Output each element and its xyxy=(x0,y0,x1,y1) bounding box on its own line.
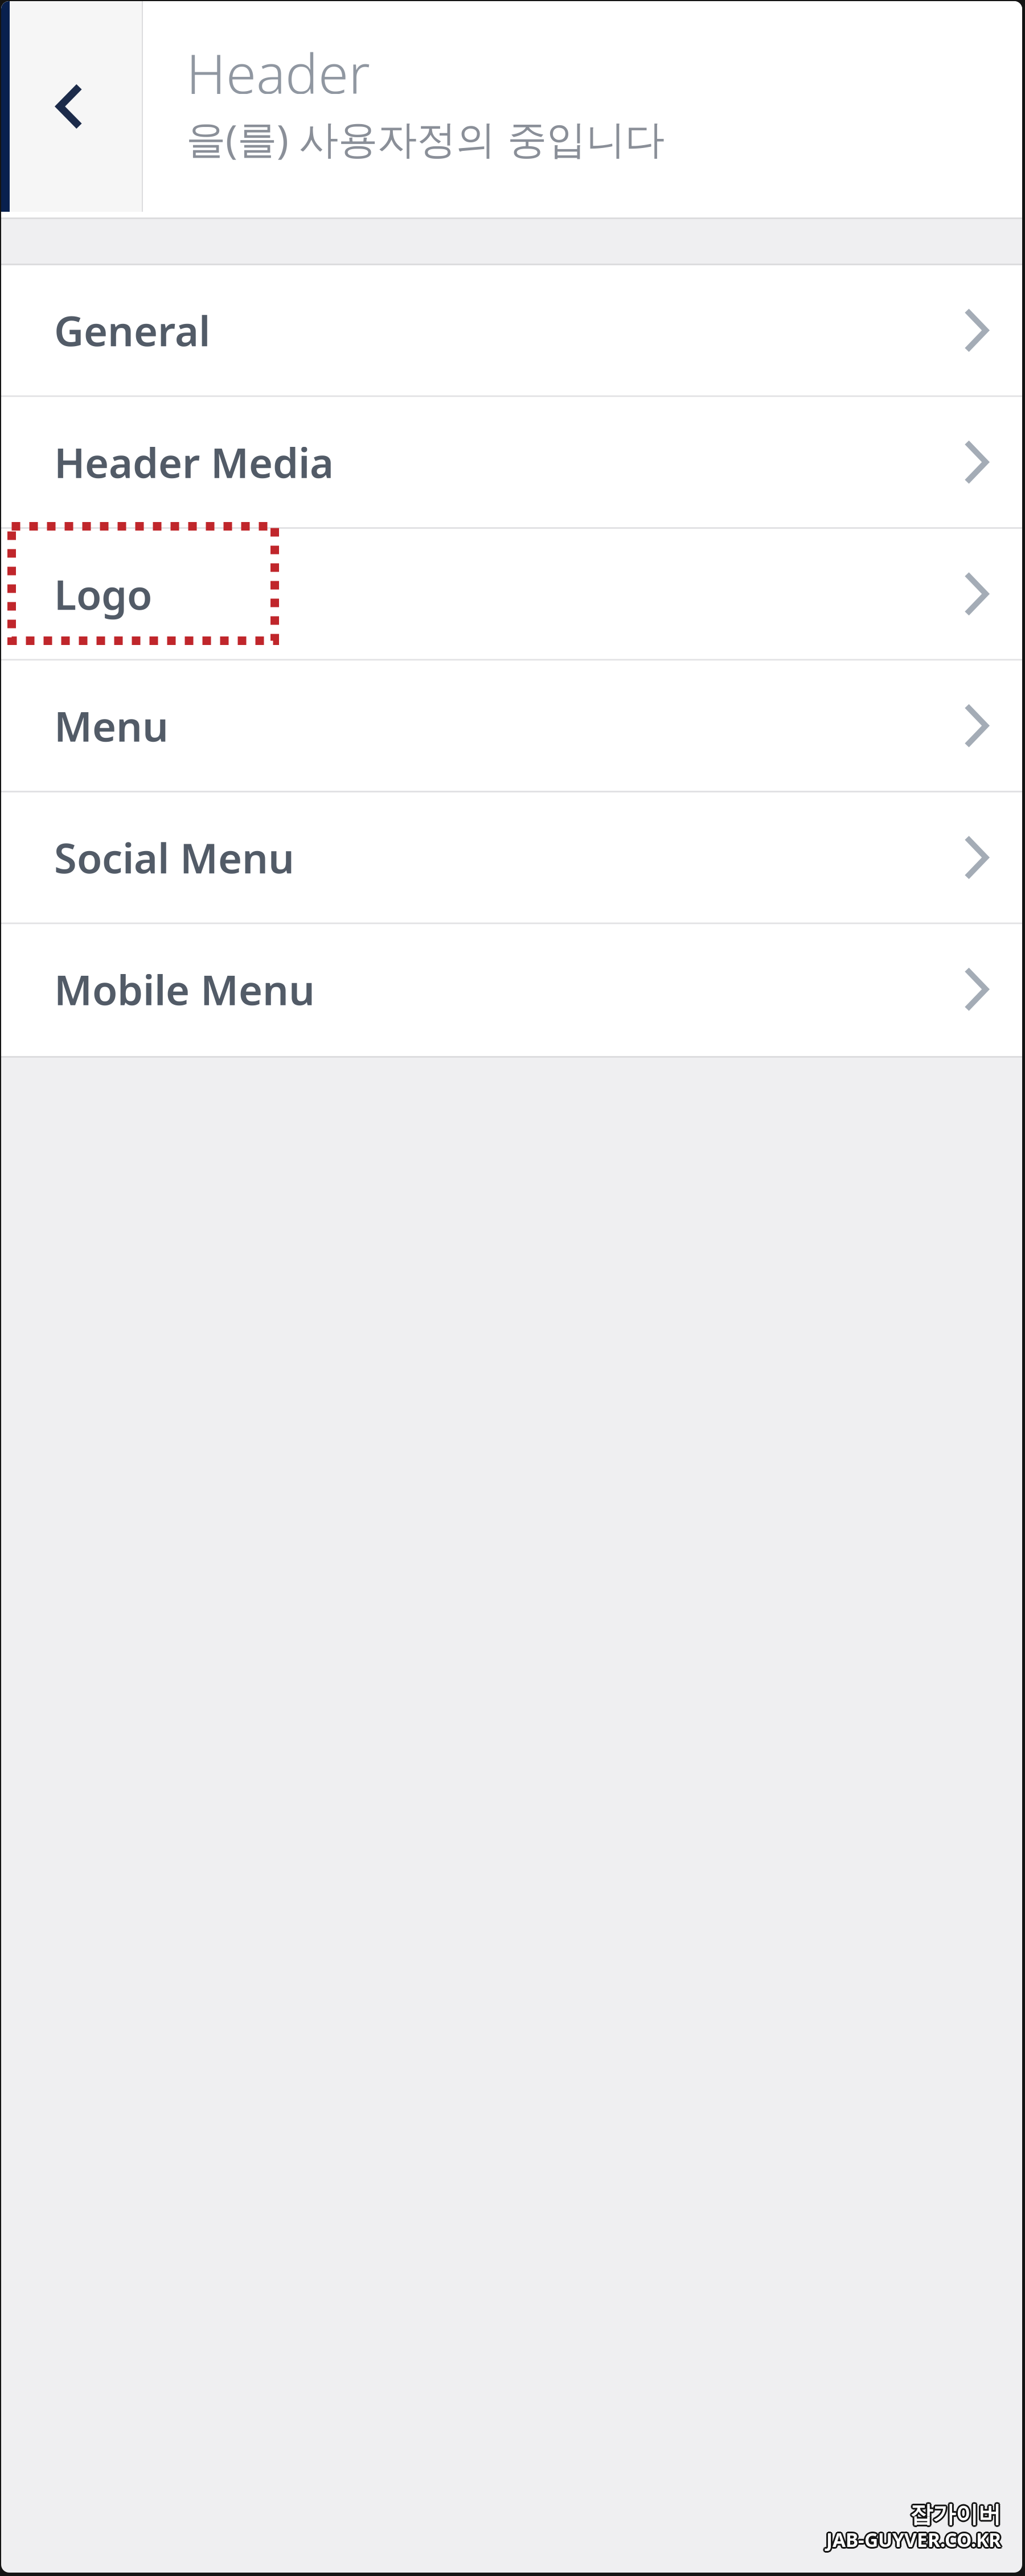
staticText: JAB-GUYVER.CO.KR xyxy=(827,2528,1002,2553)
button[interactable]: General xyxy=(1,265,1022,397)
staticText: Logo xyxy=(54,567,152,621)
staticText: Header xyxy=(186,36,370,109)
button[interactable]: Social Menu xyxy=(1,792,1022,924)
staticText: JAB-GUYVER.CO.KR xyxy=(827,2526,1002,2551)
staticText: JAB-GUYVER.CO.KR xyxy=(825,2528,1000,2553)
staticText: 잡가이버 xyxy=(909,2501,1000,2529)
staticText: 잡가이버 xyxy=(910,2500,1001,2528)
staticText: 잡가이버 xyxy=(911,2499,1002,2527)
staticText: Menu xyxy=(54,698,169,753)
staticText: 잡가이버 xyxy=(909,2499,1000,2527)
staticText: 을(를) 사용자정의 중입니다 xyxy=(186,112,665,165)
staticText: Mobile Menu xyxy=(54,962,315,1016)
button[interactable]: Back xyxy=(10,1,142,217)
staticText: 잡가이버 xyxy=(911,2501,1002,2529)
staticText: JAB-GUYVER.CO.KR xyxy=(826,2529,1001,2554)
button[interactable]: Logo xyxy=(1,529,1022,661)
button[interactable]: Mobile Menu xyxy=(1,924,1022,1056)
staticText: Social Menu xyxy=(54,830,294,885)
button[interactable]: Header Media xyxy=(1,397,1022,529)
staticText: JAB-GUYVER.CO.KR xyxy=(828,2527,1003,2552)
staticText: JAB-GUYVER.CO.KR xyxy=(825,2526,1000,2551)
staticText: JAB-GUYVER.CO.KR xyxy=(826,2525,1001,2551)
staticText: JAB-GUYVER.CO.KR xyxy=(825,2527,999,2552)
staticText: 잡가이버 xyxy=(910,2499,1001,2527)
staticText: 잡가이버 xyxy=(908,2500,999,2528)
staticText: JAB-GUYVER.CO.KR xyxy=(826,2527,1001,2552)
staticText: 잡가이버 xyxy=(912,2500,1003,2528)
staticText: Header Media xyxy=(54,435,334,489)
staticText: 잡가이버 xyxy=(910,2502,1001,2530)
button[interactable]: Menu xyxy=(1,661,1022,792)
staticText: General xyxy=(54,303,210,358)
